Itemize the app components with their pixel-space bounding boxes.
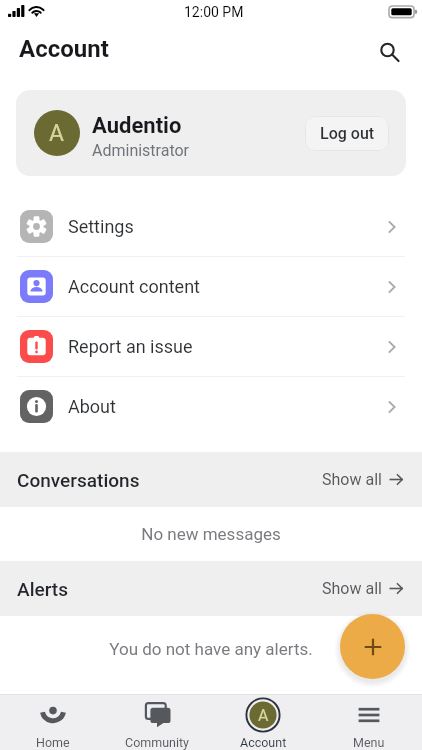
staticText: Home	[36, 735, 70, 750]
staticText: About	[68, 396, 116, 417]
button[interactable]: A	[16, 90, 406, 176]
staticText: A	[49, 120, 65, 147]
button[interactable]: Alerts	[0, 561, 422, 616]
button[interactable]: Account content	[0, 257, 422, 316]
staticText: Audentio	[92, 113, 182, 139]
button[interactable]: Settings	[0, 197, 422, 256]
staticText: No new messages	[141, 524, 281, 544]
staticText: Administrator	[92, 141, 190, 160]
staticText: A	[258, 706, 269, 725]
button[interactable]: Create	[340, 614, 405, 679]
staticText: Menu	[353, 735, 385, 750]
button[interactable]: Home	[0, 695, 105, 750]
staticText: Account	[19, 35, 109, 63]
button[interactable]: Log out	[305, 116, 389, 151]
staticText: Settings	[68, 216, 134, 237]
button[interactable]: About	[0, 377, 422, 436]
staticText: Show all	[322, 470, 382, 489]
staticText: Log out	[320, 124, 375, 143]
staticText: Show all	[322, 579, 382, 598]
button[interactable]: A	[210, 695, 316, 750]
staticText: Account content	[68, 276, 200, 297]
staticText: Alerts	[17, 578, 68, 600]
button[interactable]: Community	[105, 695, 210, 750]
button[interactable]: Report an issue	[0, 317, 422, 376]
button[interactable]: Conversations	[0, 452, 422, 507]
staticText: Report an issue	[68, 336, 193, 357]
staticText: 12:00 PM	[184, 4, 244, 20]
button[interactable]: Menu	[316, 695, 422, 750]
button[interactable]: Search	[369, 32, 409, 72]
staticText: Conversations	[17, 469, 140, 491]
staticText: Community	[125, 735, 190, 750]
staticText: You do not have any alerts.	[109, 639, 313, 659]
staticText: Account	[240, 735, 287, 750]
